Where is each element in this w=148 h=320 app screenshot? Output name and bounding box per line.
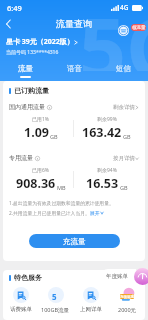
- staticText: 流量查询: [56, 18, 92, 29]
- staticText: 按月详情: [113, 155, 135, 162]
- staticText: 已用6%: [32, 167, 50, 174]
- staticText: 16.53: [86, 175, 119, 192]
- staticText: 6:49: [7, 3, 22, 13]
- button[interactable]: 话费账单: [3, 287, 38, 313]
- staticText: 语音: [67, 64, 82, 73]
- staticText: 已订购流量: [14, 86, 49, 95]
- staticText: 剩余99%: [97, 116, 117, 123]
- button[interactable]: 按月详情: [113, 155, 139, 162]
- staticText: GB: [120, 184, 128, 191]
- staticText: 国内通用流量: [9, 103, 45, 111]
- staticText: 5G: [52, 291, 61, 300]
- button[interactable]: 促销活动: [131, 24, 146, 31]
- staticText: 剩余94%: [97, 167, 117, 174]
- staticText: 2000元: [118, 306, 137, 314]
- staticText: GB: [123, 133, 131, 140]
- staticText: 领流量: [132, 25, 146, 31]
- staticText: 剩余详情: [113, 104, 135, 111]
- button[interactable]: 流量: [0, 64, 50, 78]
- staticText: 话费账单: [10, 306, 32, 313]
- staticText: 100GB流量: [41, 306, 70, 314]
- button[interactable]: 年度账单: [106, 269, 128, 283]
- staticText: 充值返现: [120, 295, 134, 299]
- staticText: 163.42: [82, 124, 122, 141]
- staticText: 星卡 39元（2022版）: [6, 37, 74, 47]
- staticText: 2.共用流量上月已使用量已计入当月。: [9, 210, 90, 217]
- button[interactable]: 星卡 39元（2022版）: [6, 37, 78, 47]
- staticText: GB: [50, 133, 58, 140]
- button[interactable]: 年度账单: [134, 268, 148, 285]
- staticText: MB: [57, 184, 66, 191]
- button[interactable]: 语音: [50, 64, 99, 78]
- button[interactable]: 展开: [90, 210, 100, 216]
- button[interactable]: 短信: [99, 64, 148, 78]
- staticText: 5G: [79, 0, 148, 71]
- staticText: 当前号码 133****4316: [6, 49, 59, 56]
- staticText: 1.09: [24, 124, 49, 141]
- staticText: 专用流量: [9, 154, 33, 162]
- button[interactable]: 剩余详情: [113, 104, 139, 111]
- staticText: 1.超出流量为有效及过期数和流量的累计使用量。: [9, 200, 114, 207]
- staticText: 流量: [18, 64, 33, 73]
- button[interactable]: Back: [0, 16, 16, 32]
- staticText: 特色服务: [14, 273, 42, 282]
- button[interactable]: 上网详单: [73, 287, 109, 313]
- staticText: 908.36: [16, 175, 56, 192]
- button[interactable]: 5G: [38, 287, 73, 314]
- button[interactable]: 充值返现: [109, 287, 145, 314]
- staticText: 短信: [116, 64, 131, 73]
- staticText: 已用1%: [32, 116, 50, 123]
- staticText: 上网详单: [80, 306, 102, 313]
- staticText: 4G: [120, 3, 129, 12]
- staticText: 年度账单: [106, 273, 128, 280]
- button[interactable]: 充流量: [29, 234, 120, 248]
- staticText: 充流量: [63, 237, 86, 246]
